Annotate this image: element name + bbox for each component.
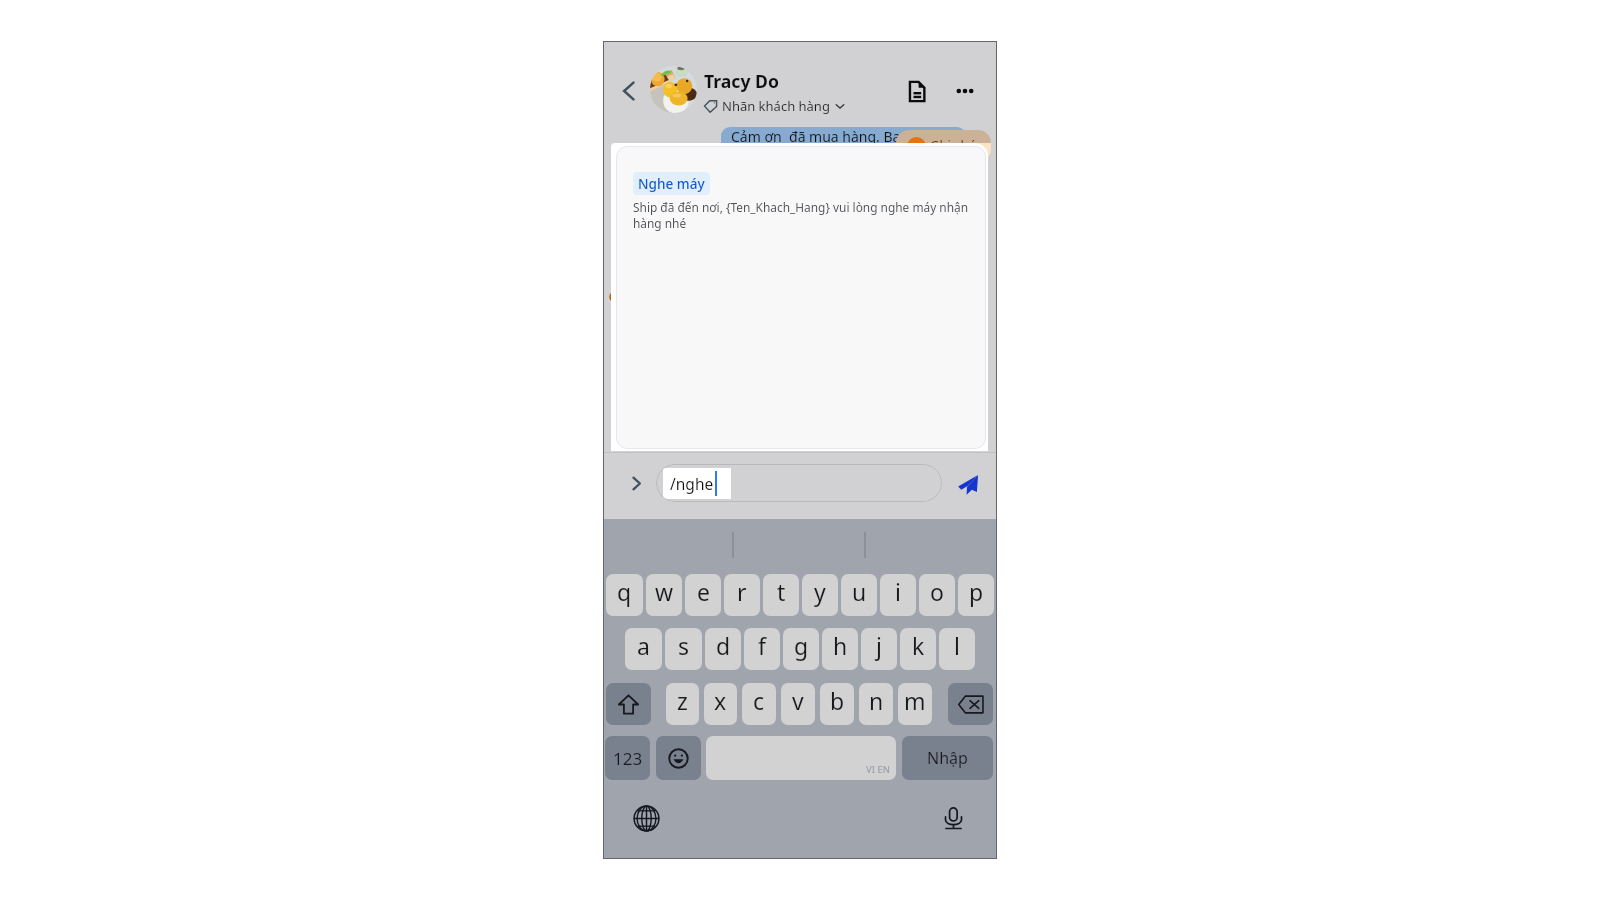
button[interactable]: Key bbox=[606, 683, 651, 725]
button[interactable]: w bbox=[646, 574, 682, 616]
button[interactable]: i bbox=[880, 574, 916, 616]
button[interactable]: More options bbox=[951, 77, 979, 105]
staticText: b bbox=[830, 685, 845, 716]
button[interactable]: u bbox=[841, 574, 877, 616]
button[interactable]: n bbox=[859, 683, 893, 725]
button[interactable]: o bbox=[919, 574, 955, 616]
staticText: j bbox=[876, 630, 882, 661]
staticText: p bbox=[969, 576, 984, 607]
staticText: r bbox=[737, 576, 747, 607]
staticText: h bbox=[833, 630, 848, 661]
button[interactable]: Nghe máy bbox=[633, 172, 710, 195]
button[interactable]: Back bbox=[615, 77, 643, 105]
staticText: o bbox=[930, 576, 944, 607]
button[interactable]: Change language bbox=[631, 803, 661, 833]
button[interactable]: /nghe bbox=[656, 464, 942, 502]
button[interactable]: Space bbox=[706, 736, 896, 780]
staticText: k bbox=[912, 630, 925, 661]
staticText: Ship đã đến nơi, {Ten_Khach_Hang} vui lò… bbox=[633, 199, 985, 231]
staticText: g bbox=[794, 630, 809, 661]
button[interactable]: Key bbox=[605, 736, 650, 780]
button[interactable]: k bbox=[900, 628, 936, 670]
button[interactable]: Send bbox=[953, 469, 983, 499]
button[interactable]: e bbox=[685, 574, 721, 616]
staticText: q bbox=[617, 576, 632, 607]
staticText: Cảm ơn đã mua hàng. Ba bbox=[731, 127, 901, 146]
staticText: f bbox=[758, 630, 766, 661]
staticText: v bbox=[792, 685, 804, 716]
button[interactable]: a bbox=[625, 628, 662, 670]
button[interactable]: Voice input bbox=[938, 803, 968, 833]
staticText: 123 bbox=[613, 747, 643, 770]
staticText: Tracy Do bbox=[704, 69, 779, 93]
staticText: d bbox=[716, 630, 731, 661]
staticText: u bbox=[852, 576, 867, 607]
button[interactable]: d bbox=[705, 628, 741, 670]
button[interactable]: Key bbox=[656, 736, 701, 780]
button[interactable]: t bbox=[763, 574, 799, 616]
staticText: /nghe bbox=[670, 473, 714, 494]
staticText: VI EN bbox=[866, 763, 890, 776]
button[interactable]: Show more actions bbox=[622, 469, 650, 497]
button[interactable]: c bbox=[742, 683, 776, 725]
staticText: z bbox=[677, 685, 688, 716]
button[interactable]: r bbox=[724, 574, 760, 616]
button[interactable]: Key bbox=[902, 736, 993, 780]
button[interactable]: s bbox=[665, 628, 702, 670]
staticText: m bbox=[904, 685, 926, 716]
button[interactable]: j bbox=[861, 628, 897, 670]
staticText: a bbox=[637, 630, 650, 661]
button[interactable]: g bbox=[783, 628, 819, 670]
button[interactable]: Key bbox=[948, 683, 993, 725]
staticText: Ghi chú bbox=[930, 136, 977, 154]
button[interactable]: Notes bbox=[903, 77, 931, 105]
button[interactable]: b bbox=[820, 683, 854, 725]
staticText: s bbox=[678, 630, 690, 661]
staticText: l bbox=[954, 630, 960, 661]
staticText: Nhãn khách hàng bbox=[722, 97, 830, 115]
button[interactable]: f bbox=[744, 628, 780, 670]
staticText: w bbox=[655, 576, 674, 607]
button[interactable]: Profile photo bbox=[650, 66, 697, 113]
staticText: i bbox=[895, 576, 901, 607]
button[interactable]: x bbox=[704, 683, 737, 725]
button[interactable]: z bbox=[666, 683, 699, 725]
button[interactable]: q bbox=[606, 574, 643, 616]
button[interactable]: v bbox=[781, 683, 815, 725]
staticText: e bbox=[697, 576, 710, 607]
staticText: Nghe máy bbox=[638, 174, 705, 193]
button[interactable]: l bbox=[939, 628, 975, 670]
staticText: x bbox=[714, 685, 727, 716]
staticText: t bbox=[777, 576, 786, 607]
staticText: Nhập bbox=[927, 747, 968, 769]
button[interactable]: h bbox=[822, 628, 858, 670]
button[interactable]: m bbox=[898, 683, 932, 725]
staticText: n bbox=[869, 685, 884, 716]
button[interactable]: p bbox=[958, 574, 994, 616]
button[interactable]: Nhãn khách hàng bbox=[704, 97, 845, 115]
staticText: y bbox=[814, 576, 826, 607]
staticText: c bbox=[753, 685, 765, 716]
button[interactable]: y bbox=[802, 574, 838, 616]
